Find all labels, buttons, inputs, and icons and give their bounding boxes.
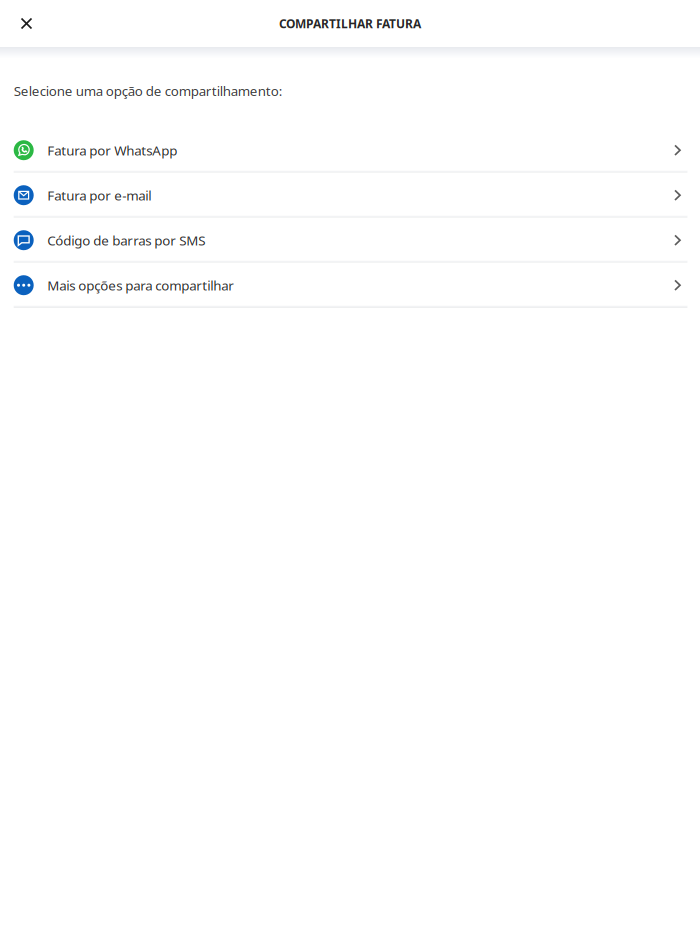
staticText: Fatura por e-mail: [47, 186, 151, 204]
button[interactable]: Fatura por e-mail: [0, 173, 700, 218]
staticText: Fatura por WhatsApp: [47, 141, 177, 159]
button[interactable]: Código de barras por SMS: [0, 218, 700, 263]
staticText: Mais opções para compartilhar: [47, 276, 234, 294]
staticText: Selecione uma opção de compartilhamento:: [14, 82, 283, 100]
staticText: Código de barras por SMS: [47, 231, 205, 249]
staticText: COMPARTILHAR FATURA: [279, 15, 421, 31]
button[interactable]: Fatura por WhatsApp: [0, 128, 700, 173]
button[interactable]: Mais opções para compartilhar: [0, 263, 700, 308]
button[interactable]: Fechar: [0, 0, 53, 47]
